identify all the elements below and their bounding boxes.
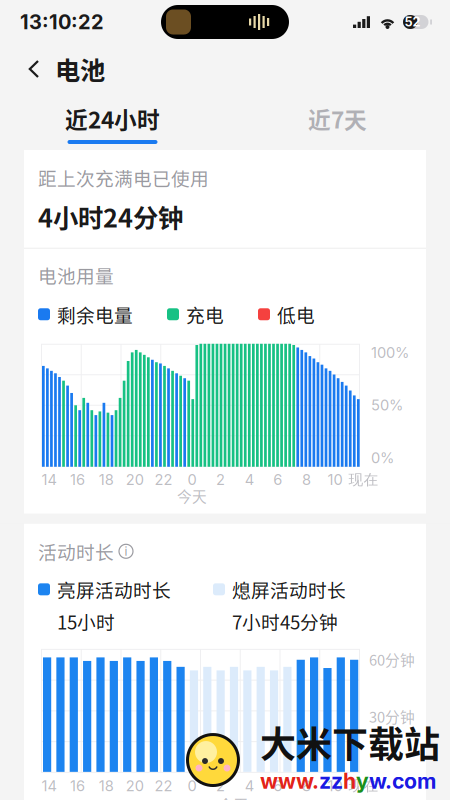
staticText: 剩余电量 xyxy=(57,301,133,328)
staticText: h xyxy=(343,768,356,794)
staticText: 16 xyxy=(70,777,85,795)
staticText: 100% xyxy=(371,344,409,361)
staticText: 20 xyxy=(126,471,144,489)
staticText: y xyxy=(356,768,369,794)
staticText: 22 xyxy=(154,777,172,795)
staticText: 8 xyxy=(302,471,311,489)
staticText: 20 xyxy=(126,777,144,795)
staticText: 距上次充满电已使用 xyxy=(38,164,209,191)
staticText: 0 xyxy=(187,471,196,489)
staticText: 16 xyxy=(70,471,85,489)
staticText: 10 xyxy=(327,777,342,795)
staticText: 4 xyxy=(245,471,254,489)
staticText: zz xyxy=(319,768,343,794)
staticText: w.com xyxy=(369,768,436,794)
staticText: 0% xyxy=(371,449,394,467)
staticText: 52 xyxy=(405,14,421,30)
staticText: 电池用量 xyxy=(38,262,114,289)
staticText: 14 xyxy=(41,471,56,489)
staticText: 6 xyxy=(273,777,282,795)
staticText: 8 xyxy=(302,777,311,795)
staticText: 50% xyxy=(371,396,403,414)
staticText: 22 xyxy=(154,471,172,489)
staticText: 18 xyxy=(99,777,114,795)
staticText: 低电 xyxy=(277,301,315,328)
staticText: www. xyxy=(260,768,319,794)
staticText: 13:10:22 xyxy=(20,10,104,34)
staticText: 18 xyxy=(99,471,114,489)
staticText: 30分钟 xyxy=(369,706,415,727)
staticText: 现在 xyxy=(349,470,379,489)
staticText: 现在 xyxy=(349,777,379,795)
staticText: 4 xyxy=(245,777,254,795)
staticText: 15小时 xyxy=(57,608,115,635)
staticText: 0 xyxy=(187,777,196,795)
staticText: 亮屏活动时长 xyxy=(57,576,171,603)
staticText: 2 xyxy=(216,777,225,795)
button[interactable]: 近24小时 xyxy=(0,94,225,150)
staticText: 活动时长 xyxy=(38,538,114,565)
staticText: 60分钟 xyxy=(369,649,415,670)
staticText: 2 xyxy=(216,471,225,489)
button[interactable]: 近7天 xyxy=(225,94,450,150)
staticText: 大米下载站 xyxy=(260,716,440,768)
staticText: 4小时24分钟 xyxy=(38,198,183,235)
staticText: 近24小时 xyxy=(65,102,160,135)
staticText: 充电 xyxy=(186,301,224,328)
staticText: 今天 xyxy=(218,794,248,800)
staticText: 14 xyxy=(41,777,56,795)
staticText: 7小时45分钟 xyxy=(232,608,338,635)
staticText: 熄屏活动时长 xyxy=(232,576,346,603)
button[interactable]: 返回 xyxy=(0,49,55,88)
staticText: 今天 xyxy=(177,485,207,506)
staticText: i xyxy=(124,544,127,558)
staticText: 电池 xyxy=(55,51,105,87)
staticText: 近7天 xyxy=(308,102,367,135)
staticText: 10 xyxy=(327,471,342,489)
staticText: 6 xyxy=(273,471,282,489)
